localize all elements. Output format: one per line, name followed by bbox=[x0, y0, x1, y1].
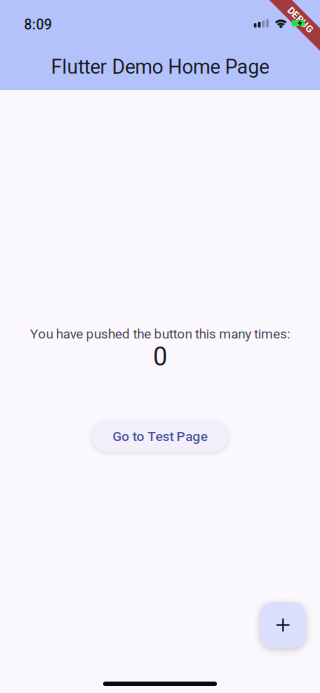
staticText: 0 bbox=[153, 342, 167, 372]
button[interactable]: Increment bbox=[260, 602, 306, 648]
staticText: Go to Test Page bbox=[112, 428, 207, 444]
staticText: DEBUG bbox=[284, 14, 316, 26]
button[interactable]: Go to Test Page bbox=[91, 421, 228, 452]
staticText: You have pushed the button this many tim… bbox=[30, 326, 290, 342]
staticText: 8:09 bbox=[24, 16, 52, 33]
staticText: Flutter Demo Home Page bbox=[51, 55, 269, 79]
